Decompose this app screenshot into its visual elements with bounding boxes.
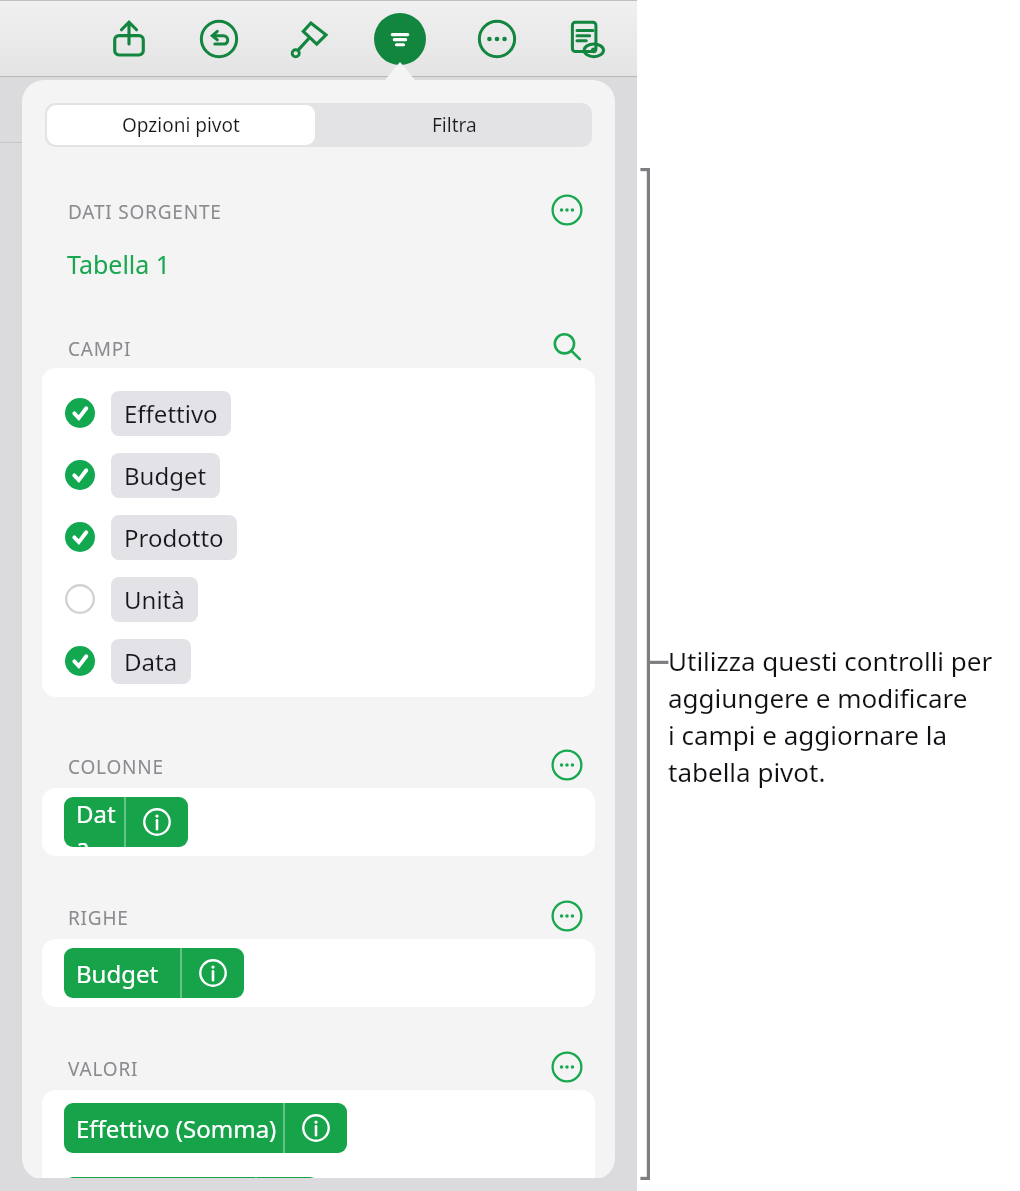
button[interactable]: Tabella 1 — [67, 247, 171, 281]
button[interactable]: Prodotto — [42, 506, 595, 568]
button[interactable]: VALORI options — [547, 1050, 587, 1084]
staticText: Data — [76, 797, 124, 847]
staticText: Budget — [124, 459, 207, 492]
staticText: Budget — [76, 957, 159, 990]
staticText: Effettivo — [124, 397, 218, 430]
button[interactable]: Unità — [42, 568, 595, 630]
button[interactable]: Budget — [42, 444, 595, 506]
button[interactable]: Effettivo (Somma) — [64, 1103, 347, 1153]
staticText: Filtra — [432, 112, 477, 138]
button[interactable]: COLONNE options — [547, 748, 587, 782]
button[interactable]: Format — [281, 10, 339, 68]
button[interactable]: RIGHE options — [547, 899, 587, 933]
staticText: Unità — [124, 583, 185, 616]
staticText: CAMPI — [68, 336, 132, 362]
staticText: Data — [124, 645, 178, 678]
staticText: Effettivo (Somma) — [76, 1112, 277, 1145]
staticText: Opzioni pivot — [122, 112, 240, 138]
button[interactable]: Filtra — [317, 103, 592, 147]
staticText: Budget (Somma) — [76, 1177, 255, 1180]
button[interactable]: CAMPI options — [547, 330, 587, 364]
button[interactable]: Effettivo — [42, 382, 595, 444]
staticText: RIGHE — [68, 905, 129, 931]
button[interactable]: Budget (Somma) — [64, 1177, 319, 1180]
button[interactable]: Comments — [556, 10, 614, 68]
staticText: COLONNE — [68, 754, 164, 780]
button[interactable]: Data — [42, 630, 595, 692]
button[interactable]: DATI SORGENTE options — [547, 193, 587, 227]
button[interactable]: Undo — [190, 10, 248, 68]
button[interactable]: Opzioni pivot — [47, 105, 315, 145]
staticText: Utilizza questi controlli per aggiungere… — [668, 643, 993, 790]
staticText: Prodotto — [124, 521, 224, 554]
button[interactable]: Share — [100, 10, 158, 68]
staticText: DATI SORGENTE — [68, 199, 222, 225]
button[interactable]: Organise — [374, 13, 426, 65]
button[interactable]: Data — [64, 797, 188, 847]
staticText: VALORI — [68, 1056, 139, 1082]
button[interactable]: More — [468, 10, 526, 68]
button[interactable]: Budget — [64, 948, 244, 998]
